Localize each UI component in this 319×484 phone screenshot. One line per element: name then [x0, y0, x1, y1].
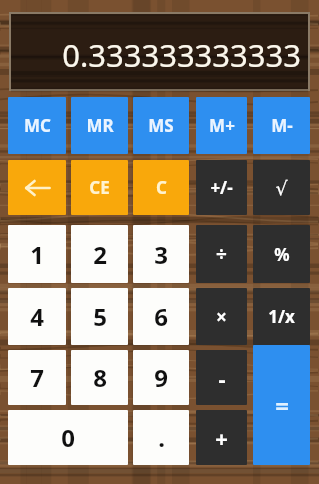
button[interactable]: 0	[8, 410, 128, 465]
button[interactable]: -	[196, 350, 247, 405]
other: Backspace	[22, 178, 52, 198]
button[interactable]: MR	[71, 97, 128, 154]
button[interactable]: 2	[71, 225, 128, 283]
staticText: 4	[30, 300, 44, 333]
button[interactable]: +/-	[196, 160, 247, 215]
button[interactable]: 3	[133, 225, 189, 283]
staticText: 8	[93, 361, 107, 394]
staticText: M-	[271, 114, 293, 137]
staticText: 2	[93, 238, 107, 271]
staticText: 5	[93, 300, 107, 333]
staticText: =	[275, 389, 289, 422]
staticText: 6	[154, 300, 168, 333]
staticText: ÷	[216, 241, 227, 267]
staticText: -	[218, 363, 226, 393]
staticText: +/-	[210, 176, 233, 199]
staticText: 1/x	[268, 305, 295, 328]
staticText: .	[158, 421, 165, 454]
button[interactable]: 9	[133, 350, 189, 405]
staticText: +	[215, 423, 228, 453]
staticText: 3	[154, 238, 168, 271]
button[interactable]: √	[253, 160, 310, 215]
button[interactable]: 1	[8, 225, 66, 283]
button[interactable]: 8	[71, 350, 128, 405]
staticText: MS	[148, 114, 174, 137]
button[interactable]: CE	[71, 160, 128, 215]
button[interactable]: =	[253, 345, 310, 465]
staticText: MC	[24, 114, 51, 137]
button[interactable]: 6	[133, 288, 189, 345]
button[interactable]: C	[133, 160, 189, 215]
button[interactable]: M-	[253, 97, 310, 154]
staticText: MR	[86, 114, 114, 137]
button[interactable]: MS	[133, 97, 189, 154]
button[interactable]: M+	[196, 97, 247, 154]
staticText: 0.333333333333	[62, 34, 301, 76]
staticText: ×	[216, 304, 227, 330]
button[interactable]: +	[196, 410, 247, 465]
staticText: CE	[89, 176, 110, 199]
staticText: √	[275, 177, 288, 199]
staticText: 0	[61, 421, 75, 454]
button[interactable]: ÷	[196, 225, 247, 283]
staticText: 9	[154, 361, 168, 394]
button[interactable]: .	[133, 410, 189, 465]
button[interactable]: 7	[8, 350, 66, 405]
button[interactable]: 1/x	[253, 288, 310, 345]
button[interactable]: Backspace	[8, 160, 66, 215]
staticText: M+	[209, 114, 235, 137]
staticText: C	[156, 176, 167, 199]
staticText: 1	[30, 238, 44, 271]
staticText: %	[274, 243, 290, 266]
button[interactable]: MC	[8, 97, 66, 154]
button[interactable]: 5	[71, 288, 128, 345]
button[interactable]: 4	[8, 288, 66, 345]
button[interactable]: %	[253, 225, 310, 283]
button[interactable]: ×	[196, 288, 247, 345]
staticText: 7	[30, 361, 44, 394]
